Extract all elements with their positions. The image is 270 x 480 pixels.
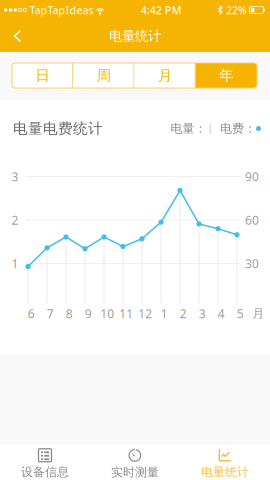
staticText: 电量统计 (201, 465, 249, 479)
button[interactable]: 设备信息 (0, 444, 90, 480)
button[interactable]: 电量统计 (180, 444, 270, 480)
staticText: 电量电费统计 (13, 119, 103, 137)
staticText: 30 (245, 255, 259, 271)
staticText: 电量： (170, 121, 206, 136)
staticText: 10 (100, 305, 114, 321)
staticText: 月 (158, 66, 173, 84)
staticText: 4 (218, 305, 225, 321)
button[interactable]: 日 (12, 63, 73, 88)
staticText: 9 (85, 305, 92, 321)
staticText: 3 (199, 305, 206, 321)
staticText: 4:42 PM (141, 3, 182, 17)
staticText: 90 (245, 168, 259, 184)
button[interactable]: 年 (196, 63, 257, 88)
staticText: 2 (11, 212, 18, 228)
staticText: TapTapIdeas (27, 3, 94, 17)
staticText: 8 (66, 305, 73, 321)
staticText: 日 (35, 66, 50, 84)
staticText: 2 (180, 305, 187, 321)
staticText: 周 (96, 66, 111, 84)
button[interactable]: 周 (73, 63, 134, 88)
staticText: 5 (237, 305, 244, 321)
staticText: 实时测量 (111, 465, 159, 480)
staticText: 电量统计 (109, 28, 161, 44)
staticText: 60 (245, 212, 259, 228)
button[interactable]: 月 (134, 63, 196, 88)
staticText: 1 (161, 305, 168, 321)
staticText: 7 (47, 305, 54, 321)
button[interactable]: Back (0, 21, 34, 51)
staticText: 年 (219, 66, 234, 84)
staticText: 1 (11, 255, 18, 271)
staticText: 12 (138, 305, 152, 321)
staticText: 11 (119, 305, 133, 321)
button[interactable]: 实时测量 (90, 443, 180, 480)
staticText: 22% (226, 3, 247, 17)
staticText: 设备信息 (21, 465, 69, 479)
staticText: 6 (28, 305, 35, 321)
staticText: 月 (252, 306, 264, 321)
staticText: 3 (11, 168, 18, 184)
staticText: 电费： (220, 121, 256, 136)
